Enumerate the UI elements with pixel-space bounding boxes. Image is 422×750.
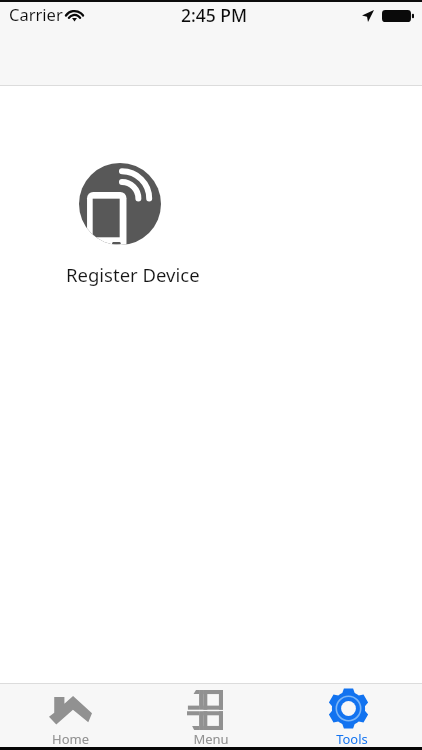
staticText: 2:45 PM bbox=[181, 3, 248, 27]
staticText: Menu bbox=[193, 730, 229, 748]
staticText: Home bbox=[52, 730, 89, 748]
button[interactable] bbox=[79, 163, 161, 245]
staticText: Carrier bbox=[9, 3, 63, 25]
button[interactable]: Tools bbox=[281, 684, 422, 747]
staticText: Register Device bbox=[66, 262, 200, 287]
button[interactable]: Menu bbox=[140, 684, 281, 747]
staticText: Tools bbox=[336, 730, 368, 748]
button[interactable]: Home bbox=[0, 684, 140, 747]
